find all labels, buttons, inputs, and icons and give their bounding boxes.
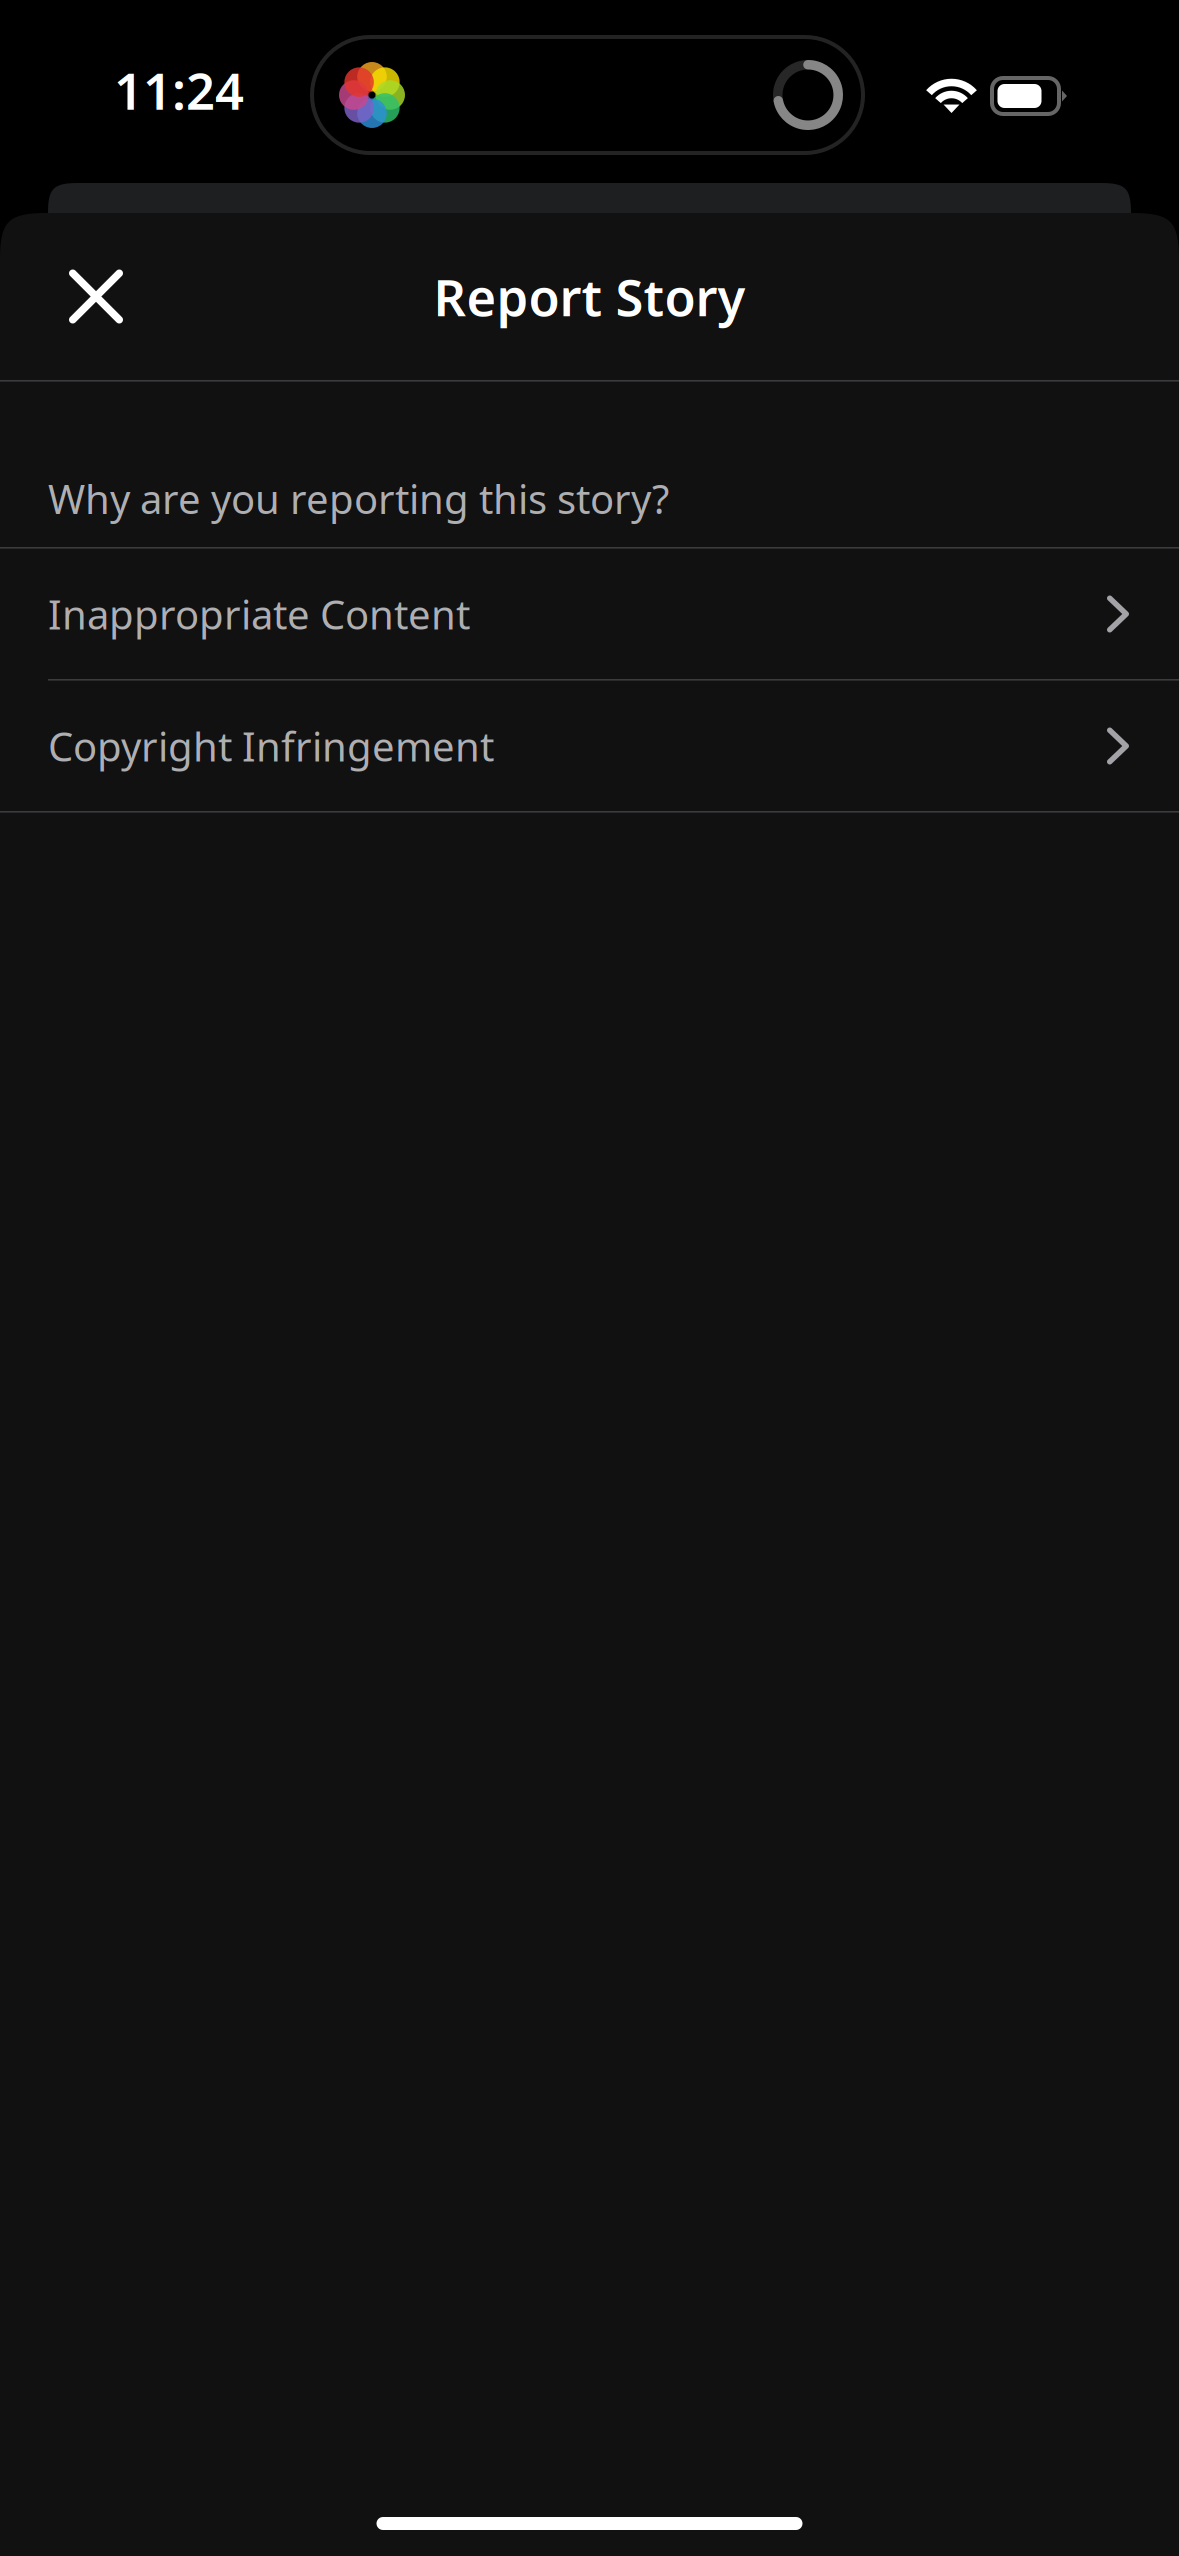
staticText: Inappropriate Content — [48, 587, 470, 640]
staticText: Copyright Infringement — [48, 719, 494, 772]
staticText: 11:24 — [114, 56, 244, 124]
button[interactable]: Inappropriate Content — [0, 549, 1179, 679]
staticText: Why are you reporting this story? — [48, 472, 669, 525]
staticText: Report Story — [433, 263, 745, 330]
button[interactable]: Close — [41, 241, 151, 351]
button[interactable]: Copyright Infringement — [0, 681, 1179, 811]
